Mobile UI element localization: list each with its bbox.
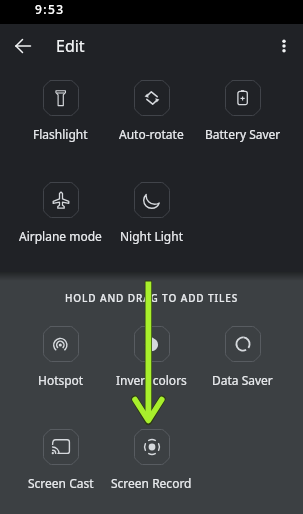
button[interactable]: Hotspot (15, 326, 106, 378)
button[interactable]: Battery Saver (197, 80, 288, 132)
button[interactable]: Night Light (106, 182, 197, 234)
staticText: Edit (56, 35, 85, 57)
staticText: Data Saver (212, 372, 273, 388)
staticText: Flashlight (33, 126, 88, 142)
staticText: Hotspot (38, 372, 84, 388)
staticText: Screen Record (111, 475, 192, 491)
button[interactable]: Screen Record (106, 429, 197, 481)
staticText: 9:53 (35, 1, 65, 17)
staticText: Invert colors (116, 372, 187, 388)
staticText: Night Light (120, 228, 183, 244)
button[interactable]: Back (6, 29, 40, 63)
staticText: HOLD AND DRAG TO ADD TILES (0, 291, 303, 305)
button[interactable]: Flashlight (15, 80, 106, 132)
button[interactable]: Invert colors (106, 326, 197, 378)
button[interactable]: More options (268, 30, 300, 62)
staticText: Airplane mode (19, 228, 102, 244)
button[interactable]: Airplane mode (15, 182, 106, 234)
staticText: Battery Saver (205, 126, 281, 142)
button[interactable]: Screen Cast (15, 429, 106, 481)
button[interactable]: Auto-rotate (106, 80, 197, 132)
staticText: Auto-rotate (119, 126, 184, 142)
staticText: Screen Cast (28, 475, 94, 491)
button[interactable]: Data Saver (197, 326, 288, 378)
